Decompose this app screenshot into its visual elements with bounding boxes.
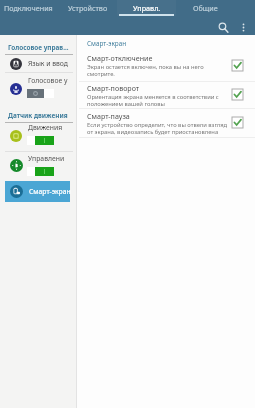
- button[interactable]: Общие: [176, 0, 235, 16]
- staticText: Подключения: [4, 3, 53, 13]
- button[interactable]: Подключения: [0, 0, 58, 16]
- staticText: Движения: [28, 123, 63, 132]
- staticText: Язык и ввод: [28, 59, 68, 68]
- staticText: Смарт-отключение: [87, 53, 153, 63]
- button[interactable]: Дополнительно: [235, 19, 252, 36]
- button[interactable]: Смарт-поворот: [77, 81, 255, 109]
- button[interactable]: Устройство: [58, 0, 117, 16]
- button[interactable]: Поиск: [215, 19, 232, 36]
- button[interactable]: Язык и ввод: [0, 56, 76, 72]
- staticText: Управлени: [28, 154, 65, 163]
- staticText: Ориентация экрана меняется в соответстви…: [87, 93, 229, 108]
- staticText: Голосовое у: [28, 76, 68, 85]
- button[interactable]: Смарт-экран: [5, 181, 70, 202]
- button[interactable]: Голосовое у: [0, 74, 76, 100]
- staticText: Голосовое управ...: [8, 43, 69, 52]
- staticText: Смарт-поворот: [87, 83, 140, 93]
- button[interactable]: Управл.: [117, 0, 176, 16]
- button[interactable]: Смарт-пауза: [77, 109, 255, 138]
- staticText: Управл.: [133, 3, 161, 13]
- staticText: Смарт-экран: [87, 39, 127, 48]
- staticText: Экран остается включен, пока вы на него …: [87, 63, 229, 78]
- staticText: Смарт-экран: [29, 187, 71, 196]
- staticText: Устройство: [68, 3, 108, 13]
- staticText: Датчик движения: [8, 111, 68, 120]
- staticText: Если устройство определит, что вы отвели…: [87, 121, 229, 136]
- button[interactable]: Смарт-отключение: [77, 52, 255, 81]
- staticText: Общие: [193, 3, 218, 13]
- staticText: Смарт-пауза: [87, 111, 130, 121]
- button[interactable]: Движения: [0, 122, 76, 148]
- button[interactable]: Управлени: [0, 152, 76, 178]
